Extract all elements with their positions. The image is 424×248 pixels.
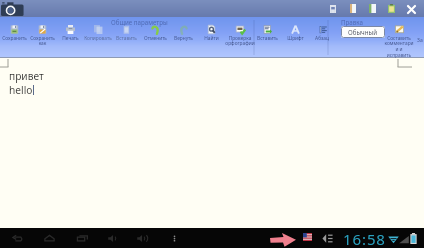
staticText: привет [9,69,44,83]
staticText: Составить комментари и и исправить [384,35,414,59]
staticText: hello [9,83,33,97]
staticText: Отменить [144,35,167,42]
button[interactable]: Hide keyboard [322,233,333,244]
button[interactable]: More options [165,228,183,248]
button[interactable]: Home [40,228,58,248]
staticText: Сохранить [2,35,27,42]
button[interactable]: Вставить [112,25,140,42]
button[interactable]: Clipboard [384,1,398,16]
button[interactable]: Вставить [253,25,281,42]
staticText: Проверка орфографии [225,35,255,47]
staticText: Печать [62,35,79,42]
button[interactable]: Проверка орфографии [225,25,255,47]
staticText: Найти [204,35,219,42]
button[interactable]: Recent document [346,1,360,16]
button[interactable]: Печать [56,25,84,42]
button[interactable]: Close [404,2,418,16]
staticText: Общие параметры [111,18,168,26]
button[interactable]: Camera [0,0,27,17]
staticText: Вставить [257,35,278,42]
staticText: Вернуть [174,35,193,42]
button[interactable]: Копировать [84,25,112,42]
button[interactable]: Сохранить [0,25,28,42]
staticText: Сохранить как [30,35,55,47]
button[interactable]: Recent apps [73,228,91,248]
button[interactable]: Back [8,228,26,248]
staticText: Правка [341,18,363,26]
button[interactable]: Volume down [104,228,122,248]
staticText: 16:58 [343,229,386,248]
button[interactable]: Вернуть [169,25,197,42]
staticText: За [417,37,423,44]
button[interactable]: Save [326,1,340,16]
button[interactable]: Абзац [308,25,336,42]
button[interactable]: Volume up [133,228,151,248]
button[interactable]: Составить комментари и и исправить [383,25,415,59]
button[interactable]: New document [365,1,379,16]
button[interactable]: Сохранить как [28,25,56,47]
staticText: Шрифт [287,35,304,42]
button[interactable]: Обычный [341,26,385,38]
staticText: Вставить [116,35,137,42]
button[interactable]: Найти [197,25,225,42]
staticText: Обычный [348,28,378,36]
staticText: Копировать [84,35,112,42]
button[interactable]: Шрифт [281,25,309,42]
button[interactable]: Keyboard language [303,233,312,241]
staticText: Абзац [315,35,329,42]
button[interactable]: Отменить [141,25,169,42]
